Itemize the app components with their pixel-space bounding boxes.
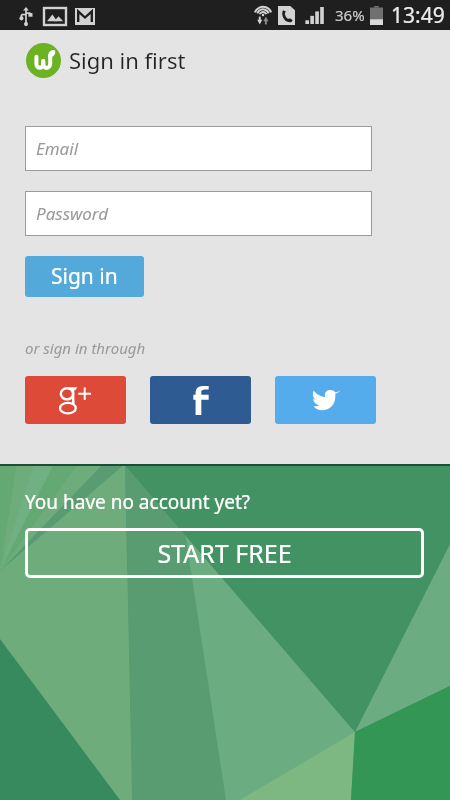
button[interactable]: Email	[25, 126, 372, 171]
button[interactable]: Sign in	[25, 256, 144, 297]
staticText: START FREE	[157, 536, 292, 570]
staticText: You have no account yet?	[25, 489, 251, 515]
staticText: Password	[36, 202, 109, 225]
staticText: 13:49	[391, 1, 445, 30]
button[interactable]: Sign in with Google Plus	[25, 376, 126, 424]
staticText: Sign in first	[69, 45, 186, 75]
button[interactable]: Password	[25, 191, 372, 236]
staticText: or sign in through	[25, 338, 146, 358]
button[interactable]: Sign in with Facebook	[150, 376, 251, 424]
button[interactable]: Sign in with Twitter	[275, 376, 376, 424]
staticText: Sign in	[51, 262, 118, 291]
staticText: 36%	[335, 5, 365, 25]
staticText: Email	[36, 137, 79, 160]
button[interactable]: START FREE	[25, 528, 424, 578]
